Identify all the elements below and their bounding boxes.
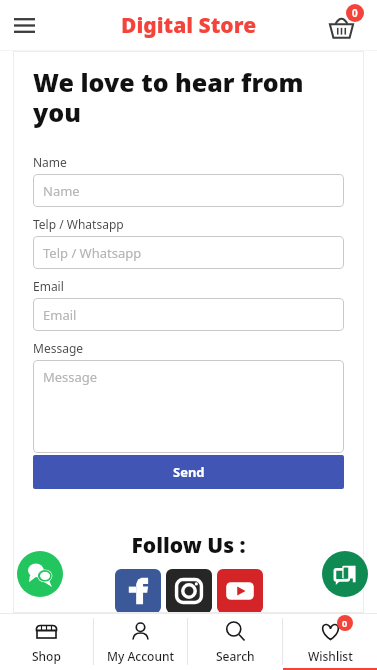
staticText: Name bbox=[43, 182, 80, 200]
staticText: Wishlist bbox=[308, 648, 353, 664]
staticText: Message bbox=[33, 340, 84, 356]
button[interactable]: Name bbox=[33, 174, 344, 207]
staticText: Send bbox=[173, 463, 205, 481]
button[interactable]: Send bbox=[33, 455, 344, 489]
staticText: Follow Us : bbox=[33, 531, 344, 560]
staticText: 0 bbox=[342, 617, 348, 629]
staticText: Digital Store bbox=[121, 11, 257, 40]
button[interactable]: Messages bbox=[322, 551, 368, 597]
staticText: Name bbox=[33, 154, 67, 170]
staticText: Telp / Whatsapp bbox=[33, 216, 124, 232]
button[interactable]: 0 bbox=[283, 613, 377, 670]
button[interactable]: Menu bbox=[4, 5, 44, 45]
button[interactable]: YouTube bbox=[217, 569, 263, 613]
staticText: We love to hear from you bbox=[33, 65, 344, 130]
button[interactable]: Message bbox=[33, 360, 344, 453]
staticText: Search bbox=[216, 648, 255, 664]
staticText: 0 bbox=[352, 6, 358, 20]
button[interactable]: Email bbox=[33, 298, 344, 331]
staticText: Shop bbox=[32, 648, 61, 664]
button[interactable]: Cart, 0 items bbox=[321, 5, 361, 45]
button[interactable]: Facebook bbox=[115, 569, 161, 613]
button[interactable]: Search bbox=[188, 613, 282, 670]
button[interactable]: Chat with us bbox=[17, 551, 63, 597]
staticText: Message bbox=[43, 368, 98, 386]
staticText: Telp / Whatsapp bbox=[43, 244, 142, 262]
button[interactable]: Instagram bbox=[166, 569, 212, 613]
button[interactable]: Telp / Whatsapp bbox=[33, 236, 344, 269]
staticText: Email bbox=[33, 278, 64, 294]
button[interactable]: My Account bbox=[94, 613, 187, 670]
staticText: My Account bbox=[107, 648, 175, 664]
button[interactable]: Shop bbox=[0, 613, 93, 670]
staticText: Email bbox=[43, 306, 77, 324]
